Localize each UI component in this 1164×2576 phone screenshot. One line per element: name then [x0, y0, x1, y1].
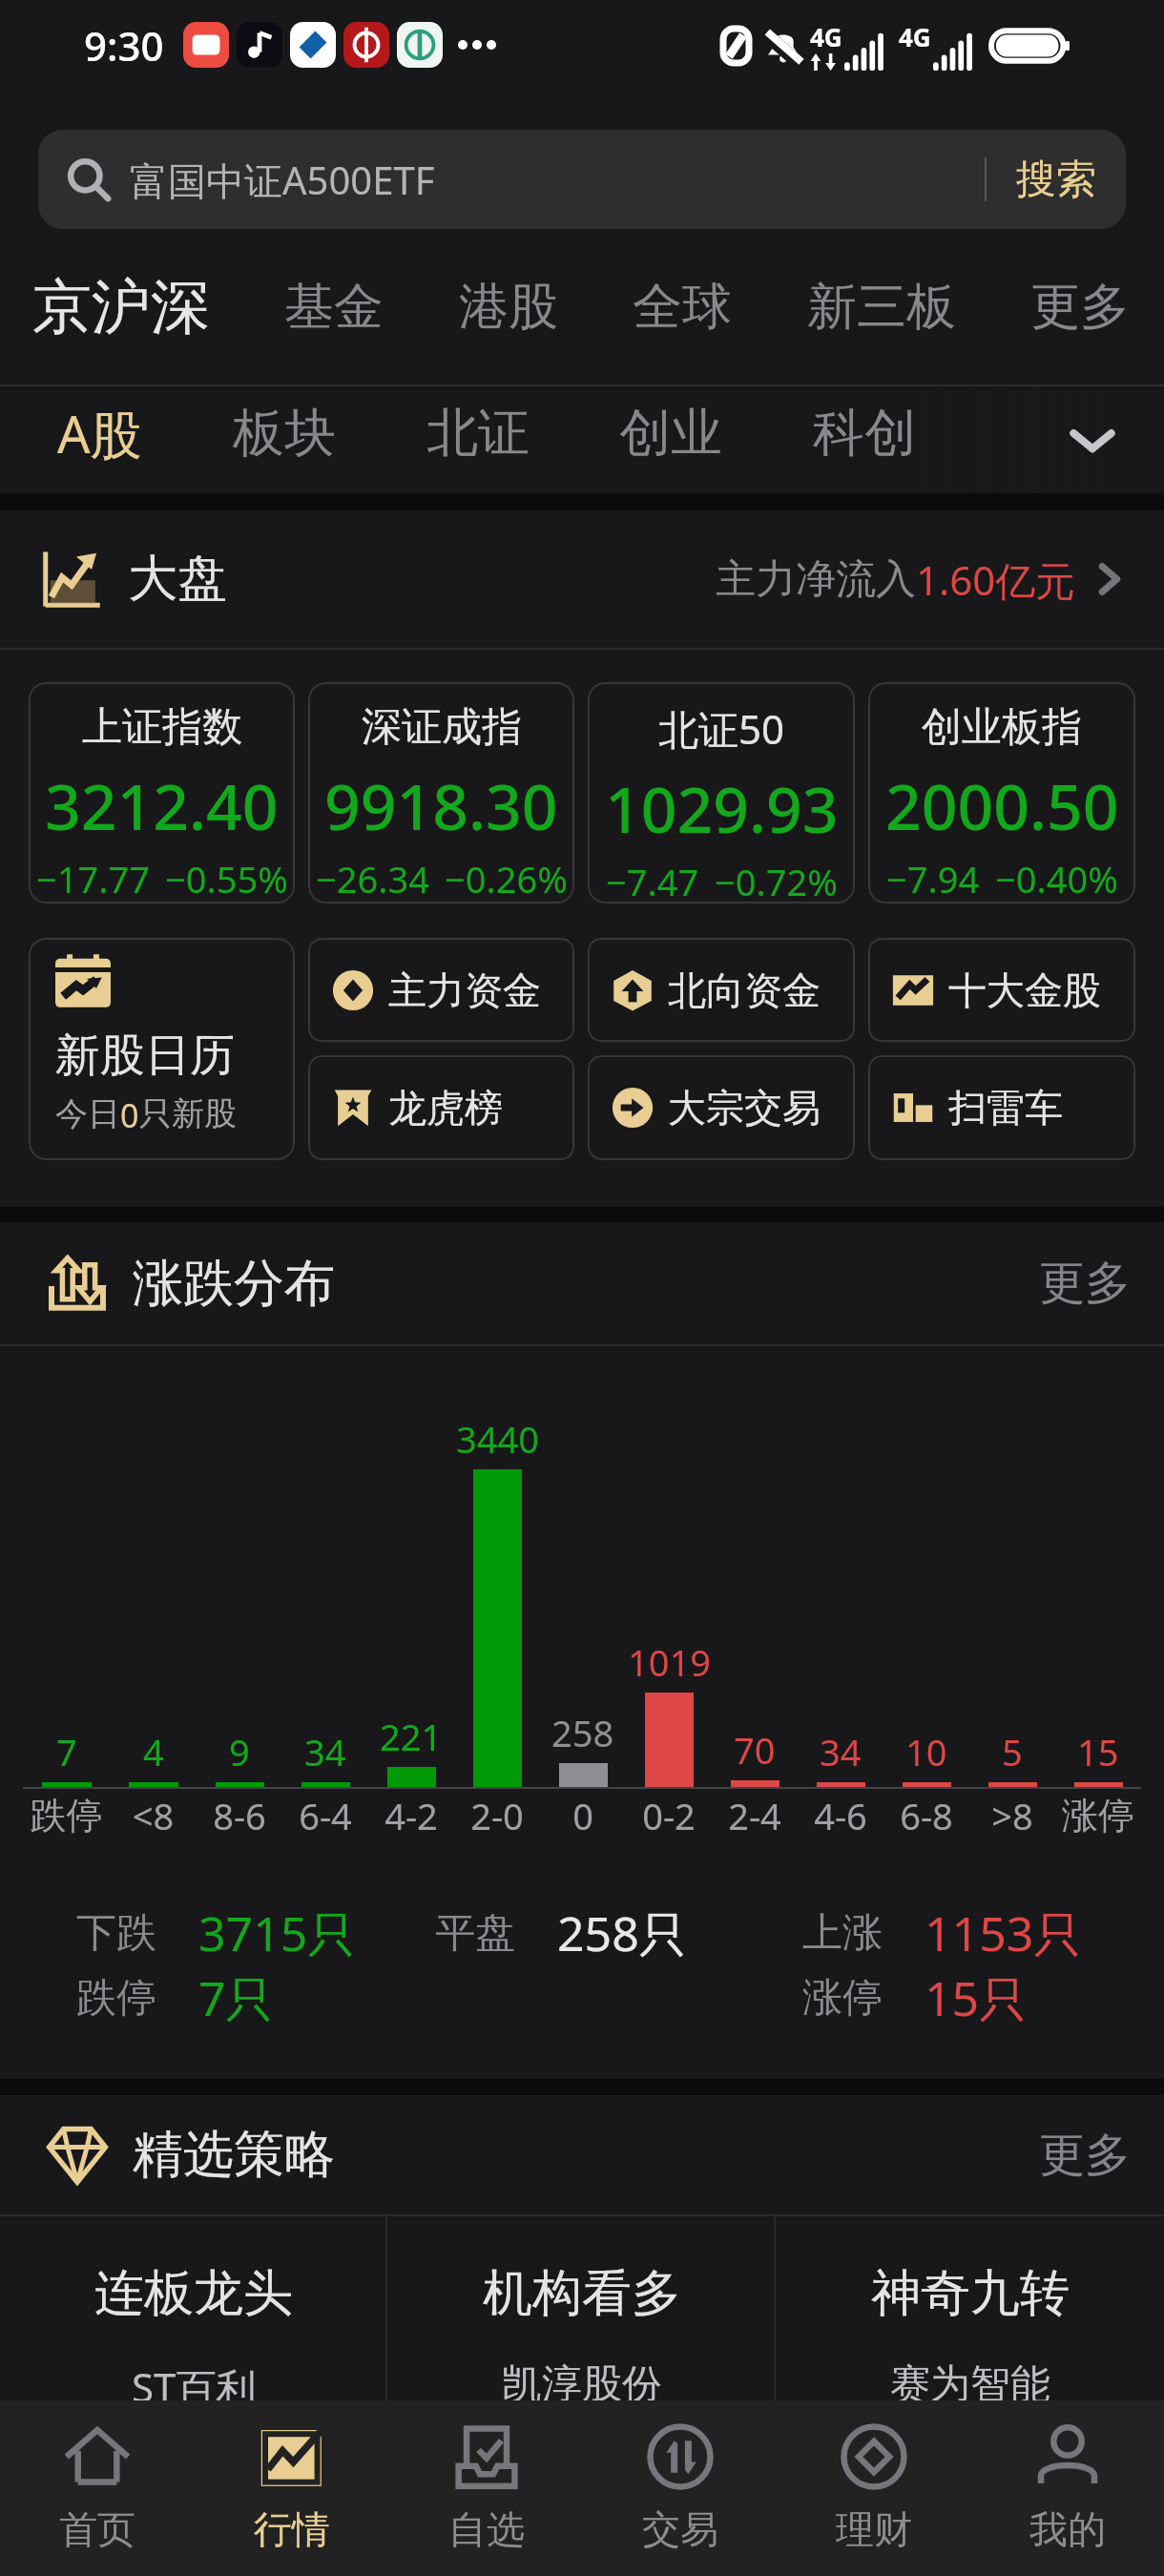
staticText: 上证指数 [82, 702, 242, 753]
button[interactable]: 深证成指 [308, 682, 574, 904]
button[interactable]: 北证 [425, 389, 531, 477]
staticText: 创业 [619, 401, 722, 466]
staticText: 主力资金 [388, 966, 541, 1014]
button[interactable]: 更多 [1039, 1247, 1131, 1319]
button[interactable]: 新三板 [801, 266, 962, 348]
staticText: 搜索 [1016, 155, 1096, 205]
staticText: 神奇九转 [871, 2262, 1070, 2325]
staticText: >8 [969, 1791, 1055, 1840]
staticText: 下跌 [76, 1908, 156, 1959]
staticText: 龙虎榜 [388, 1084, 503, 1132]
staticText: 今日 [55, 1093, 120, 1134]
button[interactable]: 搜索 [987, 130, 1126, 229]
button[interactable]: 港股 [453, 266, 564, 348]
staticText: 更多 [1039, 1255, 1131, 1312]
button[interactable]: 更多 [1039, 2119, 1131, 2192]
button[interactable]: 科创 [811, 389, 918, 477]
staticText: 0-2 [626, 1791, 712, 1840]
staticText: 京沪深 [32, 270, 210, 344]
button[interactable]: 创业 [617, 389, 724, 477]
staticText: 6-8 [883, 1791, 969, 1840]
staticText: −7.94 [886, 854, 980, 904]
staticText: 2-0 [454, 1791, 540, 1840]
staticText: 34 [304, 1727, 346, 1776]
button[interactable]: 行情 [195, 2400, 389, 2576]
staticText: 涨停 [802, 1973, 883, 2024]
staticText: 0 [540, 1791, 626, 1840]
staticText: 10 [905, 1727, 947, 1776]
staticText: 十大金股 [948, 966, 1101, 1014]
button[interactable]: 板块 [231, 389, 338, 477]
staticText: 9:30 [84, 18, 164, 73]
staticText: 新三板 [807, 276, 956, 339]
staticText: −26.34 [316, 854, 429, 904]
staticText: 更多 [1039, 2127, 1131, 2184]
button[interactable]: 北向资金 [588, 938, 855, 1042]
staticText: 涨跌分布 [133, 1252, 335, 1316]
staticText: 15 [1077, 1727, 1119, 1776]
staticText: 自选 [448, 2505, 525, 2553]
button[interactable]: 北证50 [588, 682, 855, 904]
staticText: 交易 [642, 2505, 718, 2553]
button[interactable]: 首页 [0, 2400, 195, 2576]
staticText: −17.77 [36, 854, 150, 904]
staticText: 3440 [456, 1414, 539, 1464]
staticText: 7 [56, 1727, 77, 1776]
staticText: 只新股 [139, 1093, 237, 1134]
button[interactable]: 基金 [279, 266, 389, 348]
button[interactable]: 我的 [970, 2400, 1164, 2576]
staticText: A股 [57, 398, 142, 468]
staticText: 首页 [59, 2505, 135, 2553]
staticText: −0.72% [715, 857, 838, 904]
button[interactable]: 自选 [389, 2400, 583, 2576]
staticText: 7只 [198, 1965, 274, 2030]
button[interactable]: 创业板指 [868, 682, 1135, 904]
staticText: 港股 [459, 276, 558, 339]
button[interactable]: 富国中证A500ETF [38, 130, 1126, 229]
button[interactable]: 交易 [583, 2400, 777, 2576]
button[interactable]: 上证指数 [29, 682, 295, 904]
button[interactable]: 龙虎榜 [308, 1055, 574, 1160]
staticText: 1029.93 [605, 765, 839, 851]
staticText: 赛为智能 [890, 2359, 1050, 2400]
staticText: 我的 [1029, 2505, 1106, 2553]
staticText: −0.55% [165, 854, 288, 904]
staticText: 理财 [836, 2505, 912, 2553]
staticText: 新股日历 [55, 1028, 235, 1084]
button[interactable]: 主力资金 [308, 938, 574, 1042]
staticText: −7.47 [606, 857, 699, 904]
staticText: 4 [143, 1727, 164, 1776]
staticText: 9918.30 [324, 762, 558, 848]
staticText: 上涨 [802, 1908, 883, 1959]
staticText: 涨停 [1055, 1793, 1141, 1839]
staticText: 4G [899, 20, 931, 53]
staticText: 3715只 [198, 1901, 356, 1965]
button[interactable]: 更多 [1025, 266, 1135, 348]
staticText: 深证成指 [362, 702, 522, 753]
staticText: ST百利 [132, 2359, 257, 2400]
button[interactable]: 神奇九转 [776, 2216, 1164, 2400]
staticText: 1153只 [925, 1901, 1082, 1965]
staticText: 基金 [284, 276, 384, 339]
button[interactable]: 新股日历 [29, 938, 295, 1160]
button[interactable]: 大宗交易 [588, 1055, 855, 1160]
staticText: 15只 [925, 1965, 1028, 2030]
button[interactable]: 大盘 [0, 510, 1164, 648]
button[interactable]: 连板龙头 [0, 2216, 387, 2400]
staticText: 北证50 [658, 701, 785, 756]
button[interactable]: 京沪深 [27, 260, 216, 354]
button[interactable]: 全球 [627, 266, 738, 348]
staticText: 机构看多 [483, 2262, 681, 2325]
staticText: 板块 [233, 401, 336, 466]
staticText: 34 [820, 1727, 862, 1776]
staticText: 221 [380, 1712, 443, 1761]
button[interactable]: 展开更多分类 [1021, 386, 1164, 493]
button[interactable]: A股 [55, 386, 144, 480]
staticText: 258只 [557, 1901, 687, 1965]
staticText: −0.26% [445, 854, 568, 904]
button[interactable]: 十大金股 [868, 938, 1135, 1042]
button[interactable]: 理财 [777, 2400, 970, 2576]
button[interactable]: 扫雷车 [868, 1055, 1135, 1160]
button[interactable]: 机构看多 [387, 2216, 776, 2400]
staticText: 行情 [254, 2505, 330, 2553]
